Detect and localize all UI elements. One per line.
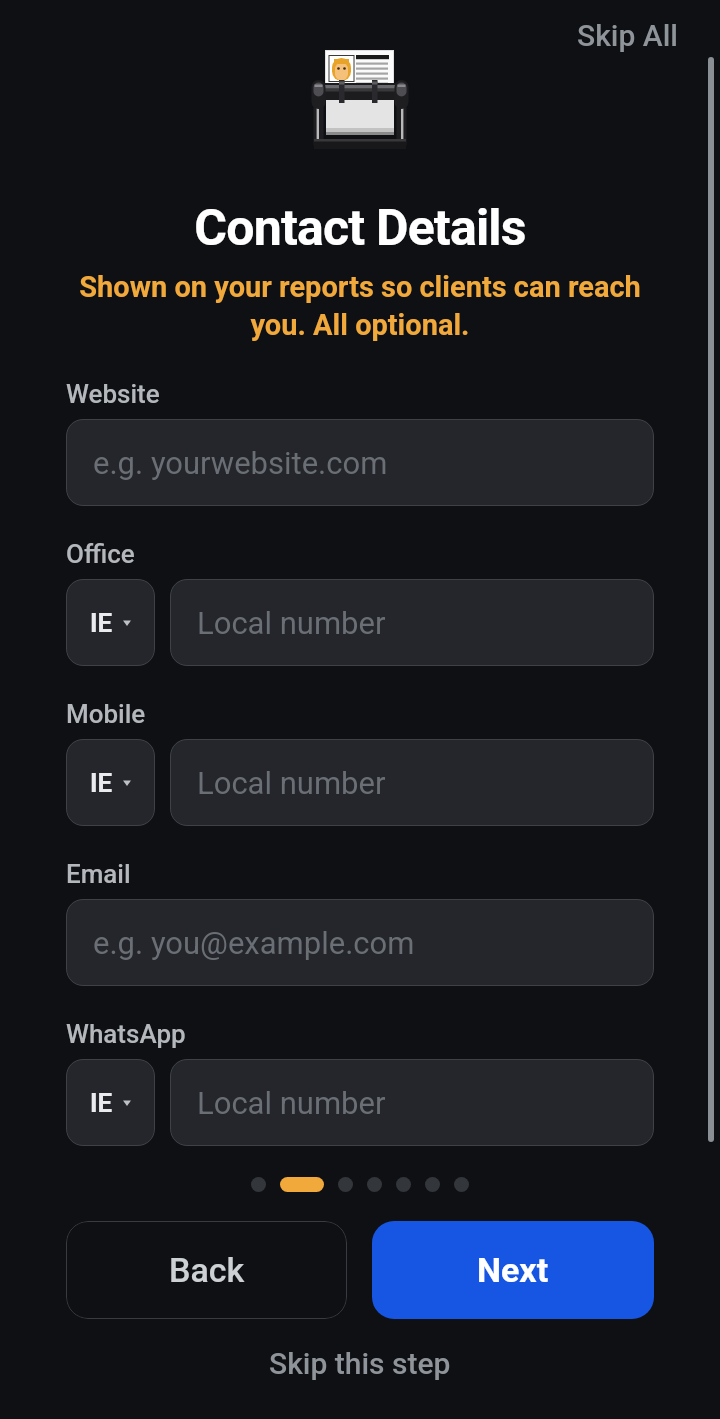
staticText: Contact Details (0, 199, 720, 258)
staticText: Local number (197, 1085, 386, 1121)
staticText: WhatsApp (66, 1019, 186, 1049)
staticText: Local number (197, 605, 386, 641)
staticText: Next (477, 1250, 549, 1290)
staticText: Skip this step (269, 1346, 451, 1381)
button[interactable]: e.g. you@example.com (66, 899, 654, 986)
staticText: Local number (197, 765, 386, 801)
staticText: Shown on your reports so clients can rea… (36, 270, 684, 342)
staticText: e.g. yourwebsite.com (93, 445, 388, 481)
staticText: IE (90, 768, 113, 798)
button[interactable]: e.g. yourwebsite.com (66, 419, 654, 506)
staticText: Email (66, 859, 131, 889)
staticText: IE (90, 1088, 113, 1118)
staticText: IE (90, 608, 113, 638)
button[interactable]: Select country code (66, 739, 155, 826)
button[interactable]: Local number (170, 579, 654, 666)
button[interactable]: Local number (170, 1059, 654, 1146)
staticText: Website (66, 379, 160, 409)
button[interactable]: Skip this step (247, 1334, 473, 1393)
button[interactable]: Back (66, 1221, 347, 1319)
staticText: Mobile (66, 699, 146, 729)
staticText: Office (66, 539, 135, 569)
button[interactable]: Select country code (66, 1059, 155, 1146)
button[interactable]: Local number (170, 739, 654, 826)
button[interactable]: Select country code (66, 579, 155, 666)
staticText: e.g. you@example.com (93, 925, 415, 961)
button[interactable]: Skip All (557, 0, 720, 65)
button[interactable]: Next (372, 1221, 654, 1319)
staticText: Back (169, 1250, 245, 1290)
staticText: Skip All (577, 18, 678, 53)
